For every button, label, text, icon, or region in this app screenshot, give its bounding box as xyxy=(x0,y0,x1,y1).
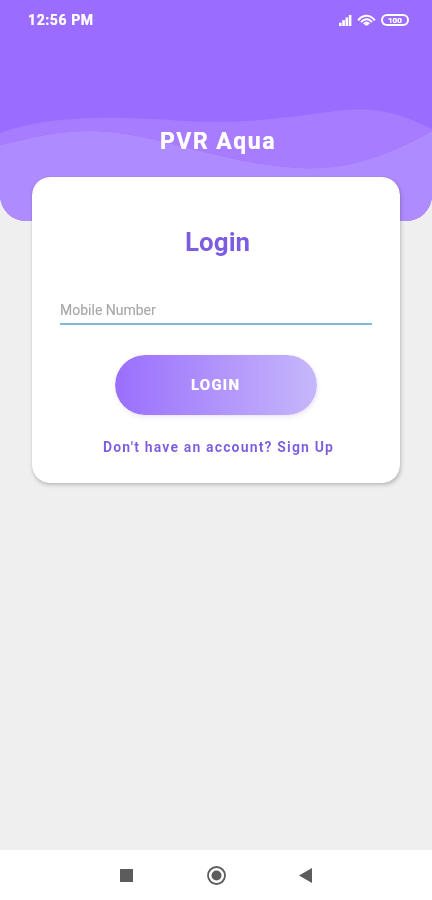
button[interactable]: Don't have an account? Sign Up xyxy=(99,436,339,458)
button[interactable]: Recent apps xyxy=(96,850,156,900)
button[interactable]: Back xyxy=(275,850,335,900)
staticText: LOGIN xyxy=(191,376,241,394)
staticText: 100 xyxy=(388,16,402,24)
staticText: Don't have an account? Sign Up xyxy=(103,439,335,455)
staticText: PVR Aqua xyxy=(160,128,276,155)
staticText: Mobile Number xyxy=(60,302,156,318)
staticText: Login xyxy=(185,227,251,257)
button[interactable]: LOGIN xyxy=(115,355,317,415)
staticText: 12:56 PM xyxy=(28,12,94,28)
button[interactable]: Home xyxy=(186,850,246,900)
